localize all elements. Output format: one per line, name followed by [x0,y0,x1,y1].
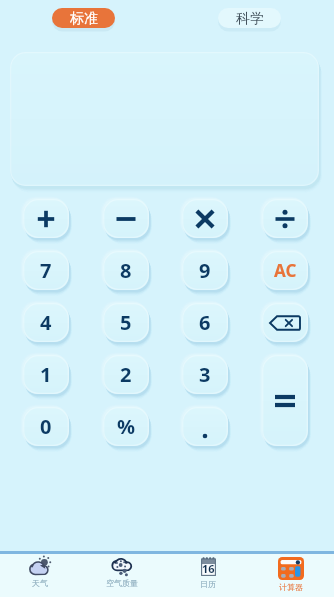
staticText: 7 [40,257,52,284]
staticText: % [117,413,136,440]
button[interactable]: 6 [182,303,231,346]
staticText: 日历 [200,579,216,589]
button[interactable] [262,303,311,346]
button[interactable] [103,199,152,242]
button[interactable]: 1 [23,355,72,398]
staticText: 16 [202,561,215,576]
staticText: 9 [199,257,211,284]
button[interactable]: 9 [182,251,231,294]
button[interactable]: 计算器 [261,557,321,593]
button[interactable]: 天气 [10,557,70,593]
button[interactable]: 3 [182,355,231,398]
staticText: 8 [120,257,132,284]
staticText: 科学 [236,10,264,28]
button[interactable]: 5 [103,303,152,346]
staticText: 6 [199,309,211,336]
staticText: 4 [40,309,52,336]
button[interactable]: 科学 [218,8,281,29]
button[interactable] [262,355,311,450]
button[interactable]: 2 [103,355,152,398]
staticText: 空气质量 [106,578,138,588]
staticText: 1 [40,361,52,388]
button[interactable]: 0 [23,407,72,450]
button[interactable] [262,199,311,242]
staticText: 天气 [32,578,48,588]
staticText: 3 [199,361,211,388]
button[interactable]: 4 [23,303,72,346]
button[interactable]: AC [262,251,311,294]
button[interactable] [182,407,231,450]
staticText: 0 [40,413,52,440]
button[interactable]: 空气质量 [92,557,152,593]
button[interactable]: % [103,407,152,450]
button[interactable] [23,199,72,242]
button[interactable]: 16 [178,557,238,593]
button[interactable]: 标准 [52,8,115,29]
button[interactable]: 8 [103,251,152,294]
button[interactable] [182,199,231,242]
staticText: 计算器 [279,582,303,592]
button[interactable]: 7 [23,251,72,294]
staticText: 5 [120,309,132,336]
staticText: AC [274,259,297,282]
staticText: 2 [120,361,132,388]
other: Backspace [262,303,311,346]
staticText: 标准 [70,10,98,28]
